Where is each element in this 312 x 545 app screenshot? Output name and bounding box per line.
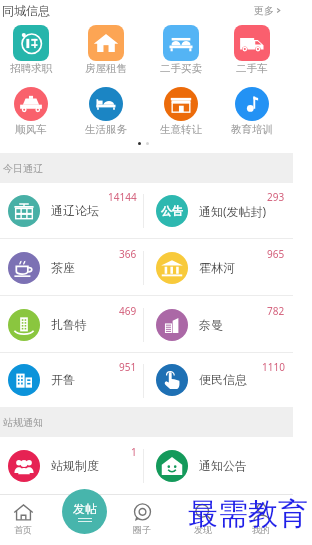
button[interactable]: 开鲁 [0,352,148,407]
button[interactable]: 招聘求职 [0,21,68,75]
button[interactable]: 发现 [178,494,228,545]
staticText: 1110 [262,360,285,374]
button[interactable]: 二手买卖 [143,21,218,75]
staticText: 更多 [254,4,274,17]
staticText: 霍林河 [199,260,235,275]
staticText: 扎鲁特 [51,317,87,332]
staticText: 发帖 [73,501,97,516]
staticText: 发现 [194,524,212,535]
button[interactable]: 通辽论坛 [0,182,148,239]
staticText: 366 [119,247,137,261]
staticText: 茶座 [51,260,75,275]
button[interactable]: 二手车 [218,21,286,75]
staticText: 二手买卖 [160,62,202,75]
staticText: 965 [267,247,285,261]
button[interactable]: 生意转让 [143,85,218,136]
staticText: 通知公告 [199,458,247,473]
staticText: 奈曼 [199,317,223,332]
button[interactable]: 房屋租售 [68,21,143,75]
button[interactable]: 教育培训 [218,85,286,136]
staticText: 951 [119,360,137,374]
staticText: 顺风车 [15,123,47,136]
staticText: 今日通辽 [3,162,43,175]
button[interactable]: 便民信息 [148,352,296,407]
button[interactable]: 圈子 [117,494,167,545]
button[interactable]: 通知公告 [148,437,296,494]
staticText: 开鲁 [51,372,75,387]
button[interactable]: 霍林河 [148,239,296,296]
staticText: 469 [119,304,137,318]
button[interactable]: 扎鲁特 [0,296,148,353]
button[interactable]: 茶座 [0,239,148,296]
button[interactable]: 发帖 [62,489,107,534]
staticText: 站规通知 [3,416,43,429]
staticText: 教育培训 [231,123,273,136]
staticText: 公告 [161,204,183,218]
staticText: 通辽论坛 [51,203,99,218]
staticText: 通知(发帖封) [199,203,267,219]
button[interactable]: 奈曼 [148,296,296,353]
staticText: 站规制度 [51,458,99,473]
staticText: 招聘求职 [10,62,52,75]
staticText: 圈子 [133,524,151,535]
staticText: 最需教育 [188,495,308,533]
button[interactable]: 更多 [254,4,282,17]
button[interactable]: 顺风车 [0,85,68,136]
button[interactable]: 站规制度 [0,437,148,494]
staticText: 便民信息 [199,372,247,387]
staticText: 1 [131,445,137,459]
button[interactable]: 生活服务 [68,85,143,136]
button[interactable]: 公告 [148,182,296,239]
staticText: 14144 [108,190,137,204]
staticText: 生活服务 [85,123,127,136]
staticText: 生意转让 [160,123,202,136]
staticText: 我的 [252,524,270,535]
staticText: 同城信息 [2,3,50,18]
staticText: 房屋租售 [85,62,127,75]
button[interactable]: 我的 [236,494,286,545]
staticText: 二手车 [236,62,268,75]
staticText: 首页 [14,524,32,535]
button[interactable]: 首页 [0,494,48,545]
staticText: 293 [267,190,285,204]
staticText: 782 [267,304,285,318]
